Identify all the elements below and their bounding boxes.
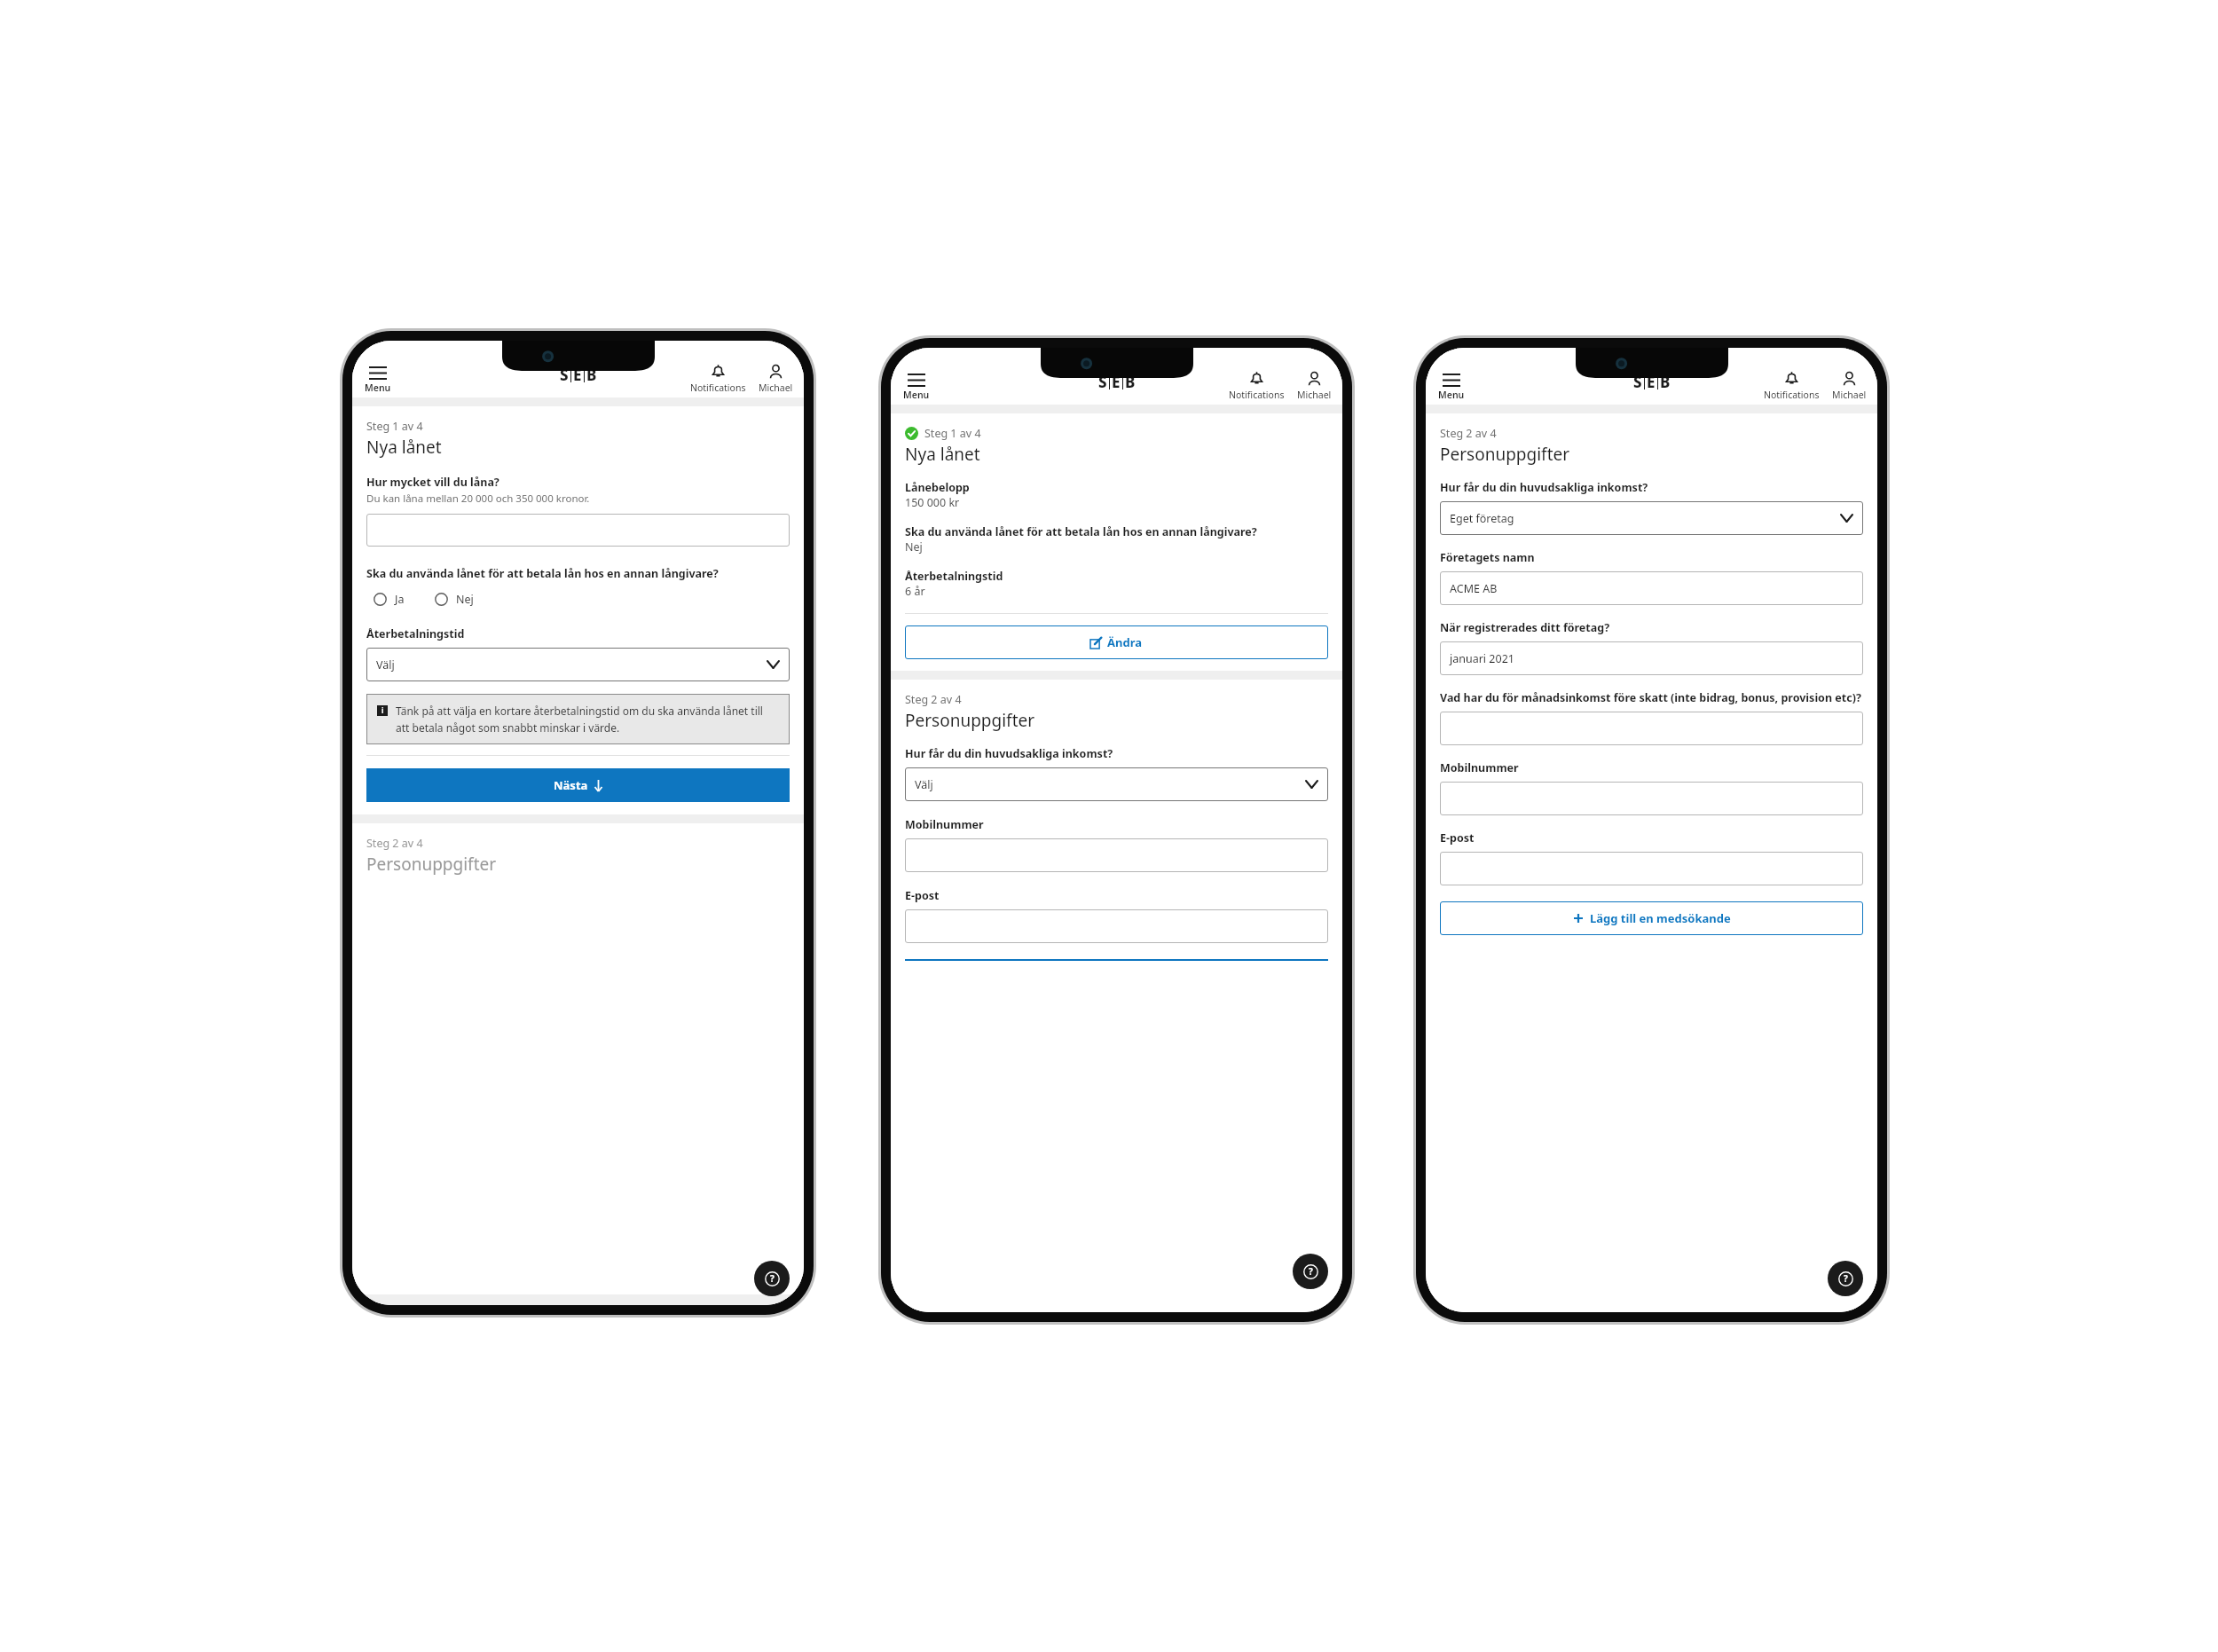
staticText: Hur mycket vill du låna? [366, 475, 499, 490]
button[interactable] [905, 909, 1328, 943]
staticText: Vad har du för månadsinkomst före skatt … [1440, 690, 1861, 705]
staticText: Du kan låna mellan 20 000 och 350 000 kr… [366, 492, 590, 506]
staticText: Steg 2 av 4 [366, 836, 423, 851]
staticText: S [1633, 372, 1642, 392]
button[interactable]: Nästa [366, 768, 790, 802]
button[interactable] [1440, 782, 1863, 815]
button[interactable]: Välj [366, 648, 790, 681]
button[interactable]: ACME AB [1440, 571, 1863, 605]
staticText: ? [1844, 1272, 1848, 1285]
staticText: Ska du använda lånet för att betala lån … [366, 566, 719, 581]
staticText: Nästa [554, 777, 588, 793]
staticText: Steg 2 av 4 [1440, 426, 1497, 441]
staticText: Personuppgifter [1440, 443, 1570, 466]
staticText: E-post [905, 888, 940, 903]
staticText: Lägg till en medsökande [1590, 910, 1731, 926]
staticText: Eget företag [1450, 511, 1514, 526]
staticText: Hur får du din huvudsakliga inkomst? [905, 746, 1113, 761]
staticText: E [573, 365, 582, 385]
staticText: Notifications [1229, 389, 1285, 401]
button[interactable]: Notifications [690, 365, 746, 394]
button[interactable]: Ja [374, 592, 405, 607]
staticText: S [560, 365, 569, 385]
staticText: När registrerades ditt företag? [1440, 620, 1610, 635]
staticText: B [1125, 372, 1136, 392]
staticText: Återbetalningstid [905, 569, 1003, 584]
button[interactable]: Help [1293, 1254, 1328, 1289]
staticText: Hur får du din huvudsakliga inkomst? [1440, 480, 1648, 495]
staticText: Mobilnummer [905, 817, 984, 832]
staticText: Ändra [1107, 634, 1143, 650]
button[interactable]: Help [1828, 1261, 1863, 1296]
staticText: Personuppgifter [366, 853, 497, 876]
button[interactable]: Help [754, 1261, 790, 1296]
staticText: Michael [1297, 389, 1332, 401]
button[interactable] [1440, 852, 1863, 885]
staticText: Nya lånet [905, 443, 980, 466]
button[interactable]: Michael [1832, 372, 1867, 401]
staticText: Notifications [690, 382, 746, 394]
staticText: E [1112, 372, 1121, 392]
staticText: Nej [456, 592, 474, 607]
button[interactable]: Notifications [1764, 372, 1820, 401]
button[interactable]: Michael [759, 365, 793, 394]
staticText: Steg 1 av 4 [924, 426, 981, 441]
button[interactable]: januari 2021 [1440, 641, 1863, 675]
staticText: ? [770, 1272, 775, 1285]
staticText: B [1660, 372, 1671, 392]
staticText: Menu [1438, 389, 1465, 401]
button[interactable]: Menu [903, 374, 930, 401]
button[interactable]: Ändra [905, 625, 1328, 659]
button[interactable]: Välj [905, 767, 1328, 801]
button[interactable] [905, 838, 1328, 872]
staticText: B [586, 365, 597, 385]
staticText: 6 år [905, 584, 925, 599]
staticText: S [1098, 372, 1107, 392]
button[interactable]: Nej [435, 592, 474, 607]
staticText: E-post [1440, 830, 1475, 846]
staticText: Välj [915, 777, 933, 792]
button[interactable]: Lägg till en medsökande [1440, 901, 1863, 935]
button[interactable]: Eget företag [1440, 501, 1863, 535]
staticText: Lånebelopp [905, 480, 970, 495]
staticText: Återbetalningstid [366, 626, 465, 641]
staticText: Michael [759, 382, 793, 394]
staticText: Michael [1832, 389, 1867, 401]
staticText: i [381, 705, 384, 716]
button[interactable]: Menu [365, 367, 391, 394]
staticText: Steg 1 av 4 [366, 419, 423, 434]
staticText: Menu [365, 382, 391, 394]
staticText: Nej [905, 539, 923, 555]
staticText: Ja [395, 592, 405, 607]
button[interactable]: Michael [1297, 372, 1332, 401]
button[interactable] [366, 514, 790, 547]
staticText: 150 000 kr [905, 495, 960, 510]
staticText: Företagets namn [1440, 550, 1535, 565]
button[interactable]: Notifications [1229, 372, 1285, 401]
button[interactable]: Menu [1438, 374, 1465, 401]
staticText: E [1647, 372, 1656, 392]
button[interactable] [1440, 712, 1863, 745]
staticText: Tänk på att välja en kortare återbetalni… [396, 704, 779, 735]
staticText: Menu [903, 389, 930, 401]
staticText: Notifications [1764, 389, 1820, 401]
staticText: Nya lånet [366, 436, 442, 459]
staticText: ACME AB [1450, 581, 1498, 596]
staticText: Steg 2 av 4 [905, 692, 962, 707]
staticText: ? [1309, 1265, 1313, 1278]
staticText: Personuppgifter [905, 709, 1035, 732]
staticText: januari 2021 [1450, 651, 1514, 666]
staticText: Ska du använda lånet för att betala lån … [905, 524, 1257, 539]
staticText: Välj [376, 657, 395, 673]
staticText: Mobilnummer [1440, 760, 1519, 775]
